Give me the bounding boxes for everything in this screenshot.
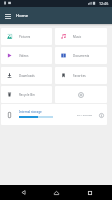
- staticText: 12:46: [99, 1, 109, 6]
- button[interactable]: Internal storage: [1, 104, 107, 125]
- staticText: Favorites: [73, 74, 86, 78]
- staticText: Internal storage: [19, 110, 42, 114]
- staticText: Downloads: [19, 74, 35, 78]
- button[interactable]: Downloads: [1, 67, 52, 84]
- button[interactable]: Recycle Bin: [1, 86, 52, 103]
- button[interactable]: Open navigation menu: [0, 7, 16, 24]
- button[interactable]: Storage info: [97, 111, 105, 119]
- staticText: Home: [16, 13, 29, 19]
- staticText: Videos: [19, 54, 29, 58]
- staticText: Recycle Bin: [19, 93, 35, 97]
- staticText: Pictures: [19, 35, 31, 39]
- button[interactable]: Videos: [1, 47, 52, 64]
- button[interactable]: Back: [12, 185, 34, 200]
- button[interactable]: Home: [45, 185, 67, 200]
- button[interactable]: Favorites: [55, 67, 107, 84]
- button[interactable]: Recent apps: [79, 185, 101, 200]
- button[interactable]: Pictures: [1, 28, 52, 45]
- button[interactable]: Documents: [55, 47, 107, 64]
- button[interactable]: Add storage: [55, 86, 107, 103]
- staticText: 9.7 / 32.0 GB: [77, 113, 92, 116]
- staticText: Music: [73, 35, 82, 39]
- staticText: Documents: [73, 54, 90, 58]
- button[interactable]: Music: [55, 28, 107, 45]
